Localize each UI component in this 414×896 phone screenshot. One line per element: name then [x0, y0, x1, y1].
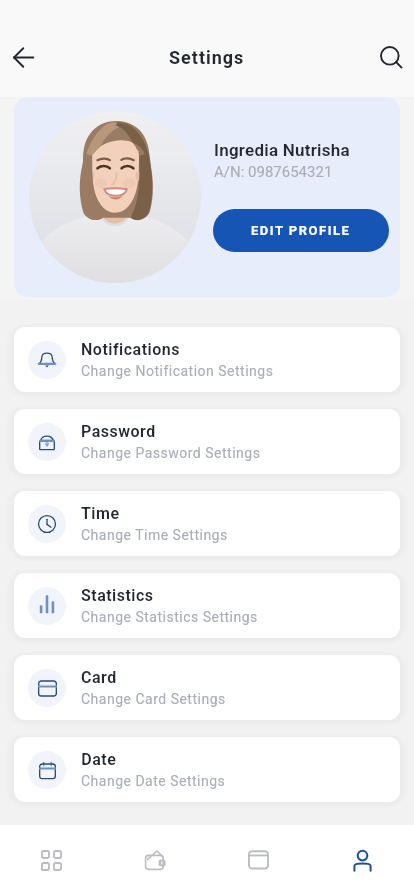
button[interactable]: Cards	[206, 824, 310, 896]
staticText: Card	[81, 668, 117, 687]
staticText: Notifications	[81, 340, 180, 359]
button[interactable]: Profile	[310, 824, 414, 896]
staticText: Ingredia Nutrisha	[214, 140, 350, 160]
staticText: Date	[81, 750, 116, 769]
button[interactable]: Card	[14, 655, 400, 720]
button[interactable]: Wallet	[103, 824, 206, 896]
button[interactable]: Notifications	[14, 327, 400, 392]
staticText: Change Date Settings	[81, 773, 226, 789]
button[interactable]: Search	[368, 34, 414, 80]
staticText: Change Time Settings	[81, 527, 228, 543]
button[interactable]: Statistics	[14, 573, 400, 638]
button[interactable]: Password	[14, 409, 400, 474]
button[interactable]: EDIT PROFILE	[213, 209, 389, 252]
staticText: EDIT PROFILE	[251, 223, 351, 238]
staticText: Change Card Settings	[81, 691, 226, 707]
button[interactable]: Time	[14, 491, 400, 556]
staticText: Statistics	[81, 586, 154, 605]
staticText: Settings	[169, 47, 245, 68]
staticText: Time	[81, 504, 120, 523]
button[interactable]: Dashboard	[0, 824, 103, 896]
staticText: A/N: 0987654321	[214, 163, 333, 181]
button[interactable]: Back	[0, 34, 46, 80]
staticText: Change Notification Settings	[81, 363, 274, 379]
button[interactable]: Date	[14, 737, 400, 802]
staticText: Change Statistics Settings	[81, 609, 258, 625]
staticText: Change Password Settings	[81, 445, 261, 461]
staticText: Password	[81, 422, 156, 441]
